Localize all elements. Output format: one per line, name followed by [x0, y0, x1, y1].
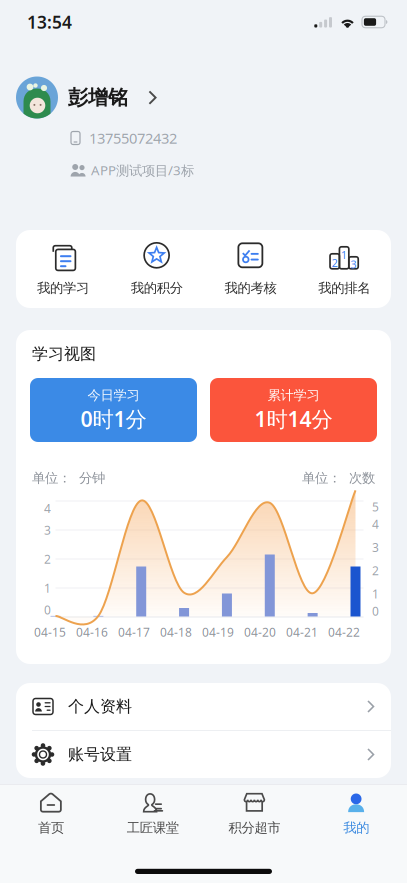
staticText: 13:54 — [27, 10, 72, 33]
staticText: APP测试项目/3标 — [91, 161, 194, 179]
button[interactable]: 个人资料 — [16, 683, 391, 731]
staticText: 3 — [372, 539, 379, 555]
staticText: 我的排名 — [318, 280, 370, 296]
button[interactable]: 工匠课堂 — [102, 785, 204, 837]
staticText: 0 — [372, 603, 379, 619]
staticText: 工匠课堂 — [127, 820, 179, 836]
staticText: 1时14分 — [254, 404, 332, 433]
staticText: 0时1分 — [80, 404, 146, 433]
staticText: 彭增铭 — [68, 85, 128, 110]
staticText: 我的学习 — [37, 280, 89, 296]
staticText: 04-17 — [118, 624, 150, 640]
button[interactable]: 今日学习 — [30, 378, 197, 442]
staticText: 单位： 分钟 — [32, 470, 105, 486]
staticText: 今日学习 — [87, 387, 139, 403]
staticText: 单位： 次数 — [302, 470, 375, 486]
staticText: 04-15 — [34, 624, 66, 640]
button[interactable]: 我的考核 — [203, 230, 297, 308]
staticText: 1 — [44, 580, 51, 596]
staticText: 04-18 — [160, 624, 192, 640]
staticText: 1 — [341, 248, 347, 262]
staticText: 04-22 — [328, 624, 360, 640]
staticText: 首页 — [38, 820, 64, 836]
staticText: 13755072432 — [89, 128, 177, 148]
staticText: 04-20 — [244, 624, 276, 640]
staticText: 累计学习 — [267, 387, 319, 403]
staticText: 04-21 — [286, 624, 318, 640]
staticText: 4 — [372, 516, 379, 532]
staticText: 2 — [372, 563, 379, 578]
staticText: 4 — [44, 500, 51, 516]
button[interactable]: 彭增铭 — [0, 73, 407, 122]
staticText: 我的积分 — [131, 280, 183, 296]
staticText: 0 — [44, 602, 51, 618]
button[interactable]: 首页 — [0, 785, 102, 837]
staticText: 我的 — [343, 820, 369, 836]
staticText: 04-19 — [202, 624, 234, 640]
button[interactable]: 我的 — [305, 785, 407, 837]
button[interactable]: 积分超市 — [203, 785, 305, 837]
staticText: 个人资料 — [68, 697, 132, 716]
button[interactable]: 我的学习 — [16, 230, 110, 308]
staticText: 学习视图 — [32, 344, 96, 364]
button[interactable]: 累计学习 — [210, 378, 377, 442]
staticText: 账号设置 — [68, 745, 132, 764]
button[interactable]: 我的积分 — [110, 230, 204, 308]
staticText: 2 — [332, 256, 338, 270]
staticText: 04-16 — [76, 624, 108, 640]
staticText: 积分超市 — [228, 820, 280, 836]
staticText: 我的考核 — [224, 280, 276, 296]
button[interactable]: 2 — [297, 230, 391, 308]
staticText: 2 — [44, 551, 51, 567]
staticText: 5 — [372, 499, 379, 515]
staticText: 1 — [372, 586, 379, 602]
staticText: 3 — [350, 257, 356, 271]
staticText: 3 — [44, 522, 51, 538]
button[interactable]: 账号设置 — [16, 731, 391, 778]
